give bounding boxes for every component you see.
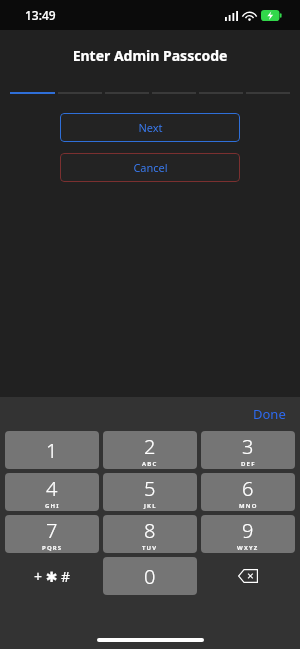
staticText: 8 (144, 517, 156, 544)
button[interactable]: Backspace (201, 557, 295, 595)
button[interactable]: 2 (103, 431, 197, 469)
button[interactable]: Next (60, 113, 240, 142)
staticText: WXYZ (237, 544, 259, 552)
staticText: 0 (144, 563, 156, 590)
staticText: JKL (144, 502, 157, 510)
staticText: 4 (46, 475, 58, 502)
staticText: 13:49 (25, 7, 56, 23)
staticText: 2 (144, 433, 156, 460)
button[interactable]: 9 (201, 515, 295, 553)
staticText: + ✱ # (34, 567, 71, 586)
staticText: 6 (242, 475, 254, 502)
staticText: 5 (144, 475, 156, 502)
button[interactable]: 1 (5, 431, 99, 469)
button[interactable]: Symbols plus star hash (5, 557, 99, 595)
button[interactable]: 0 (103, 557, 197, 595)
staticText: TUV (142, 544, 158, 552)
button[interactable]: 4 (5, 473, 99, 511)
staticText: ABC (142, 460, 158, 468)
staticText: GHI (45, 502, 60, 510)
staticText: 7 (46, 517, 58, 544)
button[interactable]: Cancel (60, 153, 240, 182)
staticText: Cancel (133, 160, 168, 175)
staticText: PQRS (42, 544, 63, 552)
staticText: DEF (241, 460, 256, 468)
button[interactable]: 5 (103, 473, 197, 511)
button[interactable]: 8 (103, 515, 197, 553)
staticText: MNO (239, 502, 258, 510)
staticText: Done (253, 405, 286, 423)
button[interactable]: 6 (201, 473, 295, 511)
staticText: Enter Admin Passcode (0, 46, 300, 65)
button[interactable]: Done (248, 402, 291, 426)
button[interactable]: 7 (5, 515, 99, 553)
staticText: Next (138, 120, 163, 135)
staticText: 9 (242, 517, 254, 544)
staticText: 1 (46, 437, 58, 464)
button[interactable]: 3 (201, 431, 295, 469)
staticText: 3 (242, 433, 254, 460)
